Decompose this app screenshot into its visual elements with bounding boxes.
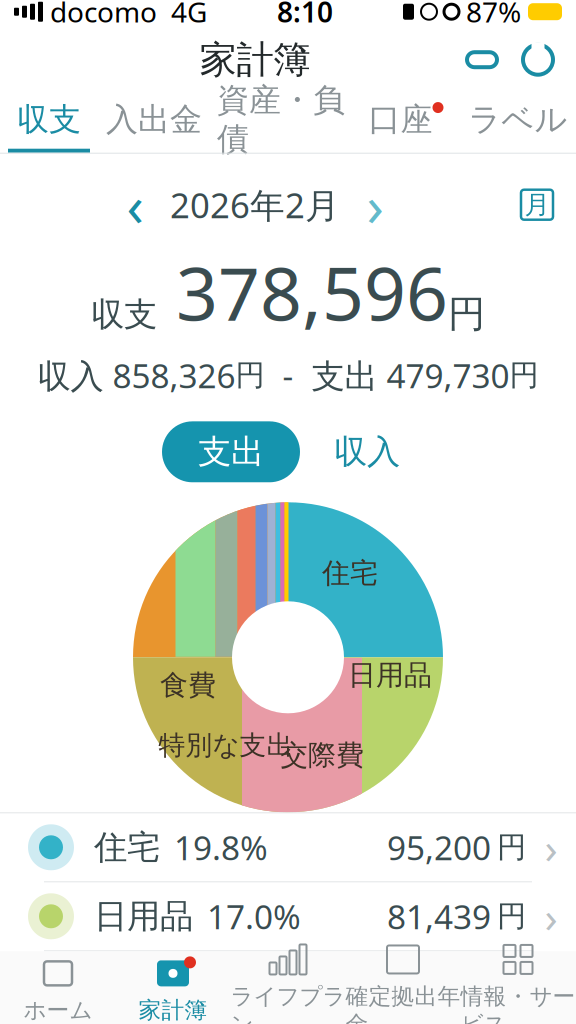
button[interactable]: 資産・負債	[210, 91, 352, 153]
staticText: ›	[544, 819, 557, 876]
staticText: 収入	[334, 431, 400, 472]
staticText: ラベル	[468, 100, 567, 139]
staticText: 収入 858,326	[37, 353, 235, 397]
button[interactable]: 収支	[0, 91, 98, 153]
staticText: 交際費	[280, 738, 364, 772]
button[interactable]: 前の月	[108, 178, 162, 232]
staticText: 口座	[368, 100, 432, 139]
button[interactable]: 月表示切替	[510, 178, 564, 232]
staticText: ホーム	[23, 996, 92, 1024]
button[interactable]: 住宅	[0, 813, 576, 881]
staticText: 支出 479,730	[311, 353, 509, 397]
staticText: 住宅	[94, 827, 160, 868]
staticText: 確定拠出年金	[345, 982, 460, 1024]
staticText: 17.0%	[207, 894, 301, 938]
staticText: ‹	[126, 167, 143, 242]
staticText: 収支	[17, 100, 81, 139]
staticText: 入出金	[106, 100, 202, 139]
staticText: 円	[235, 357, 264, 393]
staticText: 81,439	[387, 894, 491, 938]
staticText: 支出	[198, 431, 264, 472]
staticText: 情報・サービス	[460, 982, 575, 1024]
button[interactable]: ライフプラン	[230, 951, 345, 1024]
staticText: 2026年2月	[170, 182, 340, 228]
staticText: 家計簿	[138, 996, 207, 1024]
staticText: 日用品	[94, 896, 193, 937]
staticText: 378,596	[157, 244, 448, 341]
staticText: 8:10	[277, 0, 333, 30]
staticText: 95,200	[387, 825, 491, 869]
button[interactable]: 情報・サービス	[460, 951, 575, 1024]
button[interactable]: 支出	[162, 421, 300, 482]
button[interactable]: 収入	[320, 421, 414, 482]
staticText: -	[264, 353, 311, 397]
staticText: 家計簿	[199, 37, 310, 83]
staticText: ライフプラン	[230, 982, 345, 1024]
staticText: 円	[497, 898, 526, 934]
button[interactable]: 日用品	[0, 882, 576, 950]
staticText: 19.8%	[174, 825, 268, 869]
button[interactable]: ホーム	[0, 951, 115, 1024]
button[interactable]: 口座	[352, 91, 460, 153]
staticText: 円	[448, 291, 485, 337]
staticText: docomo 4G	[43, 0, 207, 30]
button[interactable]: 口座連携	[454, 32, 510, 88]
button[interactable]: ラベル	[460, 91, 576, 153]
button[interactable]: 次の月	[348, 178, 402, 232]
staticText: 月	[524, 189, 549, 220]
button[interactable]: 家計簿	[115, 951, 230, 1024]
staticText: 収支	[91, 294, 157, 335]
staticText: 87%	[466, 0, 521, 30]
staticText: 円	[509, 357, 538, 393]
staticText: 住宅	[322, 556, 378, 590]
staticText: 特別な支出	[158, 729, 293, 762]
staticText: 食費	[160, 668, 216, 702]
staticText: 日用品	[348, 658, 432, 692]
button[interactable]: 更新	[510, 32, 566, 88]
staticText: ›	[366, 167, 383, 242]
staticText: ›	[544, 888, 557, 945]
button[interactable]: 入出金	[98, 91, 210, 153]
staticText: 資産・負債	[217, 80, 345, 159]
button[interactable]: 確定拠出年金	[345, 951, 460, 1024]
staticText: 円	[497, 829, 526, 865]
